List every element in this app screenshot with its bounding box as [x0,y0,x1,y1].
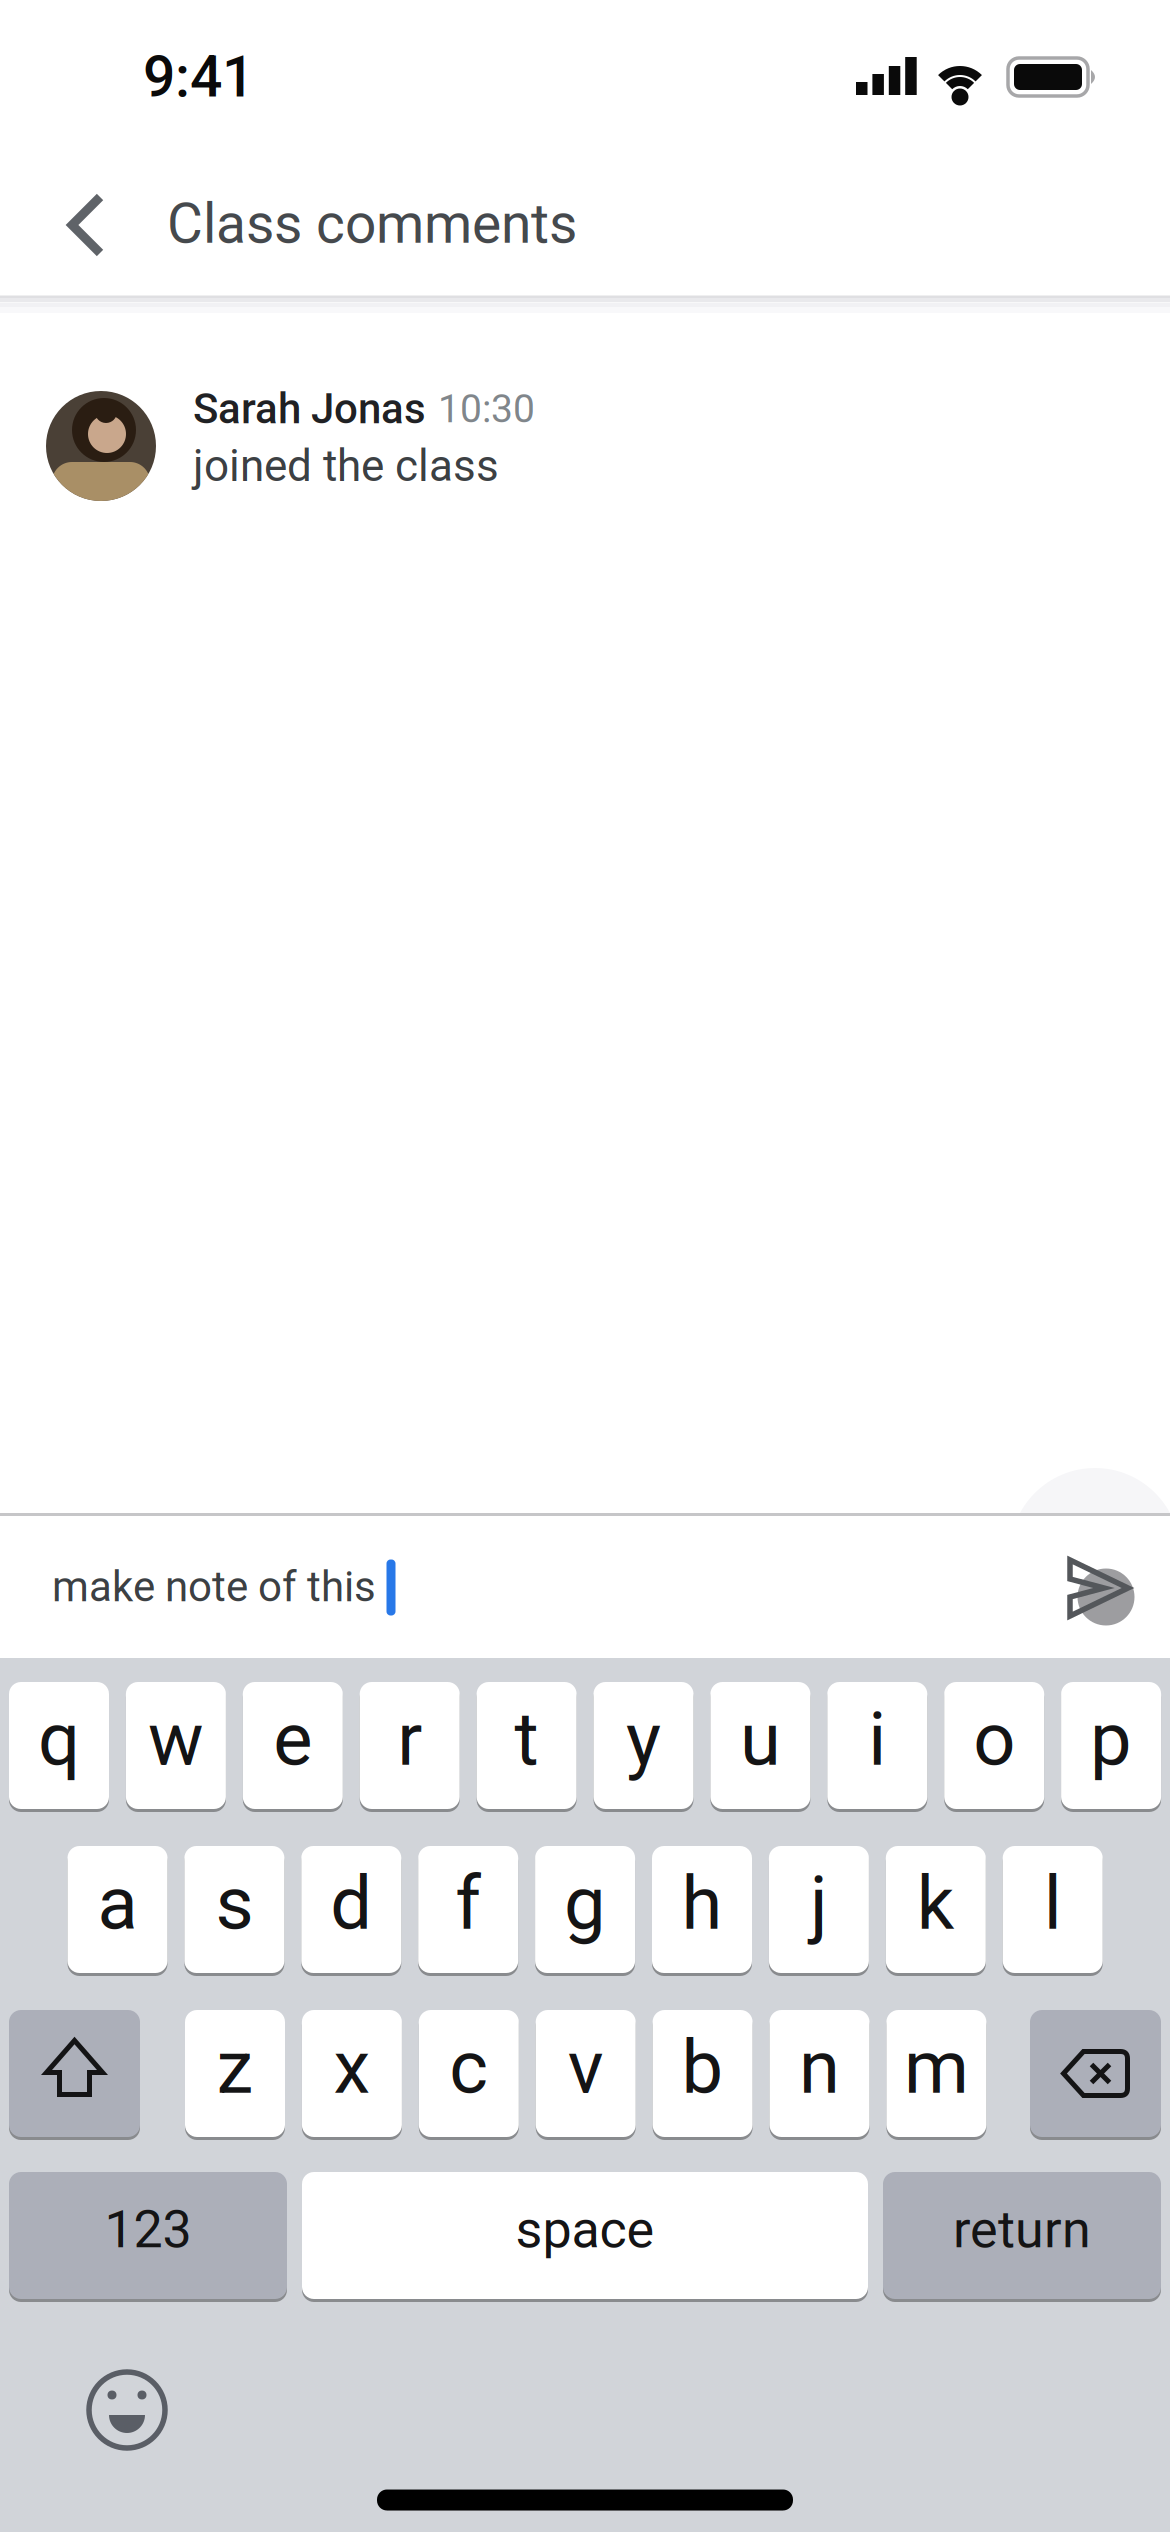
staticText: joined the class [193,440,499,492]
button[interactable]: v [536,2010,636,2137]
button[interactable]: p [1061,1682,1161,1809]
button[interactable]: t [477,1682,577,1809]
staticText: t [515,1696,539,1783]
staticText: g [564,1860,606,1947]
staticText: a [97,1860,137,1947]
button[interactable]: x [302,2010,402,2137]
staticText: c [449,2024,488,2111]
staticText: d [330,1860,372,1947]
staticText: l [1044,1860,1062,1947]
button[interactable] [1059,1548,1139,1628]
button[interactable] [9,2010,140,2137]
staticText: 10:30 [438,386,535,432]
staticText: z [216,2024,253,2111]
staticText: h [681,1860,722,1947]
staticText: make note of this [52,1562,376,1612]
staticText: b [682,2024,724,2111]
staticText: f [455,1860,481,1947]
staticText: r [397,1696,422,1783]
button[interactable]: k [886,1846,986,1973]
button[interactable]: a [67,1846,167,1973]
button[interactable] [1030,2010,1161,2137]
button[interactable]: y [593,1682,693,1809]
button[interactable]: return [883,2172,1161,2299]
button[interactable]: z [185,2010,285,2137]
button[interactable] [87,2370,167,2450]
staticText: v [568,2024,604,2111]
staticText: u [740,1696,781,1783]
staticText: k [917,1860,955,1947]
staticText: return [953,2199,1091,2260]
staticText: Class comments [167,192,577,256]
button[interactable]: r [360,1682,460,1809]
button[interactable]: 123 [9,2172,287,2299]
staticText: j [810,1860,828,1947]
staticText: n [799,2024,840,2111]
button[interactable]: i [827,1682,927,1809]
staticText: x [333,2024,370,2111]
staticText: 9:41 [143,44,254,110]
button[interactable]: e [243,1682,343,1809]
staticText: e [273,1696,312,1783]
button[interactable]: u [710,1682,810,1809]
button[interactable]: d [301,1846,401,1973]
staticText: y [626,1696,661,1783]
staticText: s [215,1860,253,1947]
button[interactable]: s [184,1846,284,1973]
button[interactable] [69,194,103,256]
staticText: 123 [104,2199,191,2260]
staticText: p [1090,1696,1132,1783]
staticText: q [38,1696,80,1783]
button[interactable]: m [886,2010,986,2137]
button[interactable]: make note of this [0,1517,1020,1657]
staticText: w [148,1696,204,1783]
staticText: m [904,2024,969,2111]
button[interactable]: f [418,1846,518,1973]
button[interactable]: c [419,2010,519,2137]
button[interactable]: w [126,1682,226,1809]
button[interactable]: space [302,2172,868,2299]
button[interactable]: n [769,2010,869,2137]
button[interactable]: q [9,1682,109,1809]
button[interactable]: h [652,1846,752,1973]
staticText: space [515,2199,654,2260]
staticText: i [868,1696,886,1783]
button[interactable]: g [535,1846,635,1973]
button[interactable]: j [769,1846,869,1973]
staticText: o [973,1696,1015,1783]
staticText: Sarah Jonas [193,384,426,434]
button[interactable]: b [653,2010,753,2137]
button[interactable]: l [1003,1846,1103,1973]
button[interactable]: o [944,1682,1044,1809]
